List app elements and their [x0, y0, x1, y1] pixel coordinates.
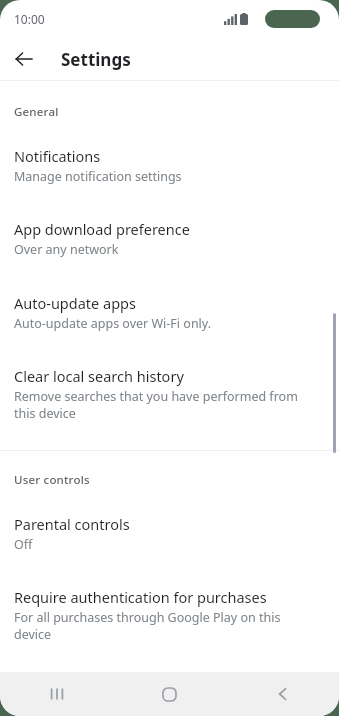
staticText: Auto-update apps over Wi-Fi only. — [14, 315, 212, 332]
staticText: Auto-update apps — [14, 293, 136, 313]
button[interactable]: Home — [113, 672, 226, 716]
staticText: Clear local search history — [14, 366, 184, 386]
button[interactable]: Back — [10, 45, 38, 73]
button[interactable]: Notifications — [0, 120, 339, 187]
button[interactable]: Parental controls — [0, 488, 339, 555]
button[interactable]: Require authentication for purchases — [0, 555, 339, 644]
staticText: Over any network — [14, 241, 119, 258]
staticText: Notifications — [14, 146, 101, 166]
staticText: Parental controls — [14, 514, 130, 534]
staticText: For all purchases through Google Play on… — [14, 609, 309, 642]
staticText: Off — [14, 536, 33, 553]
staticText: 10:00 — [14, 11, 45, 27]
button[interactable]: Back — [226, 672, 339, 716]
staticText: App download preference — [14, 219, 190, 239]
staticText: General — [14, 104, 59, 120]
staticText: Settings — [61, 48, 131, 71]
staticText: User controls — [14, 472, 90, 488]
staticText: Require authentication for purchases — [14, 587, 267, 607]
button[interactable]: Recents — [0, 672, 113, 716]
button[interactable]: Auto-update apps — [0, 260, 339, 334]
staticText: Manage notification settings — [14, 168, 182, 185]
staticText: Remove searches that you have performed … — [14, 388, 309, 421]
button[interactable]: Clear local search history — [0, 334, 339, 423]
button[interactable]: App download preference — [0, 187, 339, 260]
